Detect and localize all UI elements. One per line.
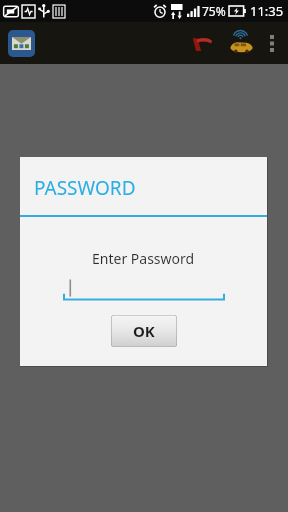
staticText: 75% [202, 3, 226, 19]
staticText: 11:35 [250, 2, 284, 20]
staticText: PASSWORD [34, 175, 136, 201]
button[interactable]: App logo [8, 30, 35, 57]
staticText: OK [133, 321, 155, 341]
button[interactable]: More options [260, 24, 284, 62]
button[interactable]: Alerts [184, 26, 218, 60]
button[interactable]: Vehicle tracking [224, 26, 258, 60]
button[interactable]: OK [111, 315, 177, 347]
staticText: Enter Password [92, 249, 195, 268]
button[interactable]: Password input field [63, 279, 225, 301]
